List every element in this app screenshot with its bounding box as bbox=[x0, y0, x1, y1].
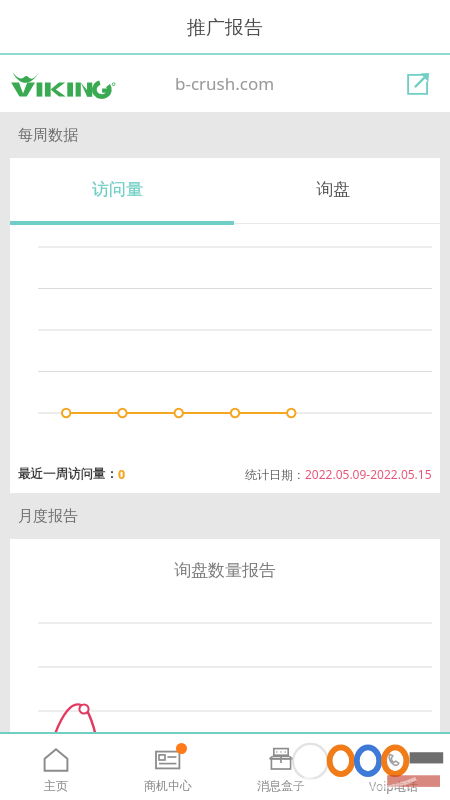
staticText: 商机中心 bbox=[144, 778, 192, 793]
staticText: Voip电话 bbox=[369, 778, 418, 794]
staticText: b-crush.com bbox=[175, 72, 275, 95]
staticText: 0 bbox=[118, 466, 126, 483]
button[interactable]: 消息盒子 bbox=[224, 732, 337, 800]
staticText: 推广报告 bbox=[187, 16, 263, 40]
button[interactable]: 访问量 bbox=[10, 158, 225, 221]
staticText: 2022.05.09-2022.05.15 bbox=[305, 466, 432, 482]
button[interactable]: 主页 bbox=[0, 732, 112, 800]
staticText: 统计日期： bbox=[245, 467, 305, 482]
staticText: 消息盒子 bbox=[257, 778, 305, 793]
button[interactable]: 商机中心 bbox=[112, 732, 224, 800]
button[interactable]: Open website bbox=[400, 66, 436, 102]
button[interactable]: VIKING logo bbox=[8, 69, 112, 99]
staticText: 最近一周访问量： bbox=[18, 466, 118, 482]
staticText: 访问量 bbox=[92, 179, 143, 200]
button[interactable]: Voip电话 bbox=[337, 732, 450, 800]
staticText: 询盘数量报告 bbox=[174, 560, 276, 581]
staticText: 月度报告 bbox=[18, 507, 78, 526]
staticText: 每周数据 bbox=[18, 126, 78, 145]
staticText: 主页 bbox=[44, 778, 68, 793]
button[interactable]: 询盘 bbox=[225, 158, 440, 221]
staticText: 询盘 bbox=[316, 179, 350, 200]
